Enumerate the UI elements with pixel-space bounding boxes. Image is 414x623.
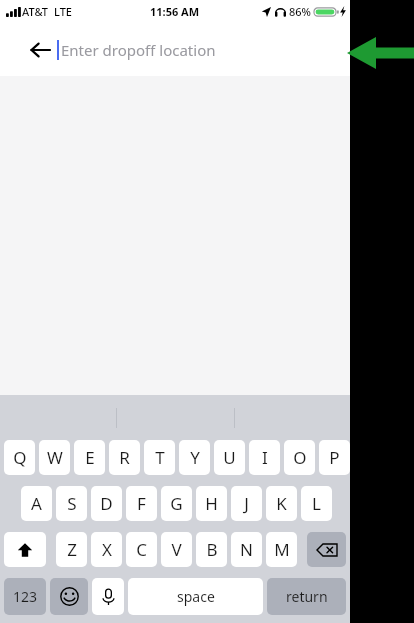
staticText: Y (190, 446, 200, 469)
staticText: I (262, 446, 268, 469)
button[interactable]: W (39, 440, 70, 475)
staticText: R (119, 446, 130, 469)
staticText: G (170, 492, 183, 515)
button[interactable]: T (144, 440, 175, 475)
button[interactable]: Emoji (50, 578, 88, 615)
button[interactable]: V (161, 532, 192, 567)
staticText: F (137, 492, 146, 515)
staticText: X (102, 538, 112, 561)
staticText: U (223, 446, 236, 469)
button[interactable]: X (91, 532, 122, 567)
button[interactable]: Shift (4, 532, 46, 567)
staticText: J (244, 492, 249, 515)
staticText: H (205, 492, 218, 515)
staticText: 86% (289, 4, 311, 19)
staticText: L (312, 492, 321, 515)
button[interactable]: K (266, 486, 297, 521)
staticText: LTE (54, 4, 72, 19)
staticText: 123 (13, 587, 38, 606)
button[interactable]: Backspace (307, 532, 346, 567)
button[interactable]: M (266, 532, 297, 567)
button[interactable]: Back (27, 37, 53, 63)
button[interactable]: Z (56, 532, 87, 567)
button[interactable]: R (109, 440, 140, 475)
button[interactable]: J (231, 486, 262, 521)
staticText: Enter dropoff location (61, 40, 216, 60)
button[interactable]: return (267, 578, 346, 615)
staticText: O (293, 446, 307, 469)
staticText: return (286, 587, 328, 606)
button[interactable]: Y (179, 440, 210, 475)
staticText: 11:56 AM (150, 4, 200, 19)
staticText: M (274, 538, 290, 561)
button[interactable]: O (284, 440, 315, 475)
button[interactable]: E (74, 440, 105, 475)
staticText: V (171, 538, 182, 561)
button[interactable]: L (301, 486, 332, 521)
button[interactable]: B (196, 532, 227, 567)
button[interactable]: S (56, 486, 87, 521)
staticText: A (31, 492, 42, 515)
staticText: AT&T (22, 4, 49, 19)
button[interactable]: F (126, 486, 157, 521)
button[interactable]: C (126, 532, 157, 567)
staticText: T (155, 446, 165, 469)
button[interactable]: I (249, 440, 280, 475)
button[interactable]: space (128, 578, 263, 615)
button[interactable]: A (21, 486, 52, 521)
button[interactable]: Q (4, 440, 35, 475)
staticText: E (85, 446, 95, 469)
button[interactable]: 123 (4, 578, 46, 615)
button[interactable]: G (161, 486, 192, 521)
staticText: space (177, 587, 215, 606)
staticText: S (67, 492, 77, 515)
button[interactable]: D (91, 486, 122, 521)
staticText: P (329, 446, 340, 469)
staticText: B (206, 538, 218, 561)
staticText: Q (13, 446, 27, 469)
staticText: Z (67, 538, 77, 561)
button[interactable]: P (319, 440, 350, 475)
staticText: D (100, 492, 113, 515)
staticText: W (47, 446, 63, 469)
button[interactable]: U (214, 440, 245, 475)
button[interactable]: Dictate (92, 578, 124, 615)
staticText: N (240, 538, 253, 561)
button[interactable]: Back (13, 28, 333, 71)
button[interactable]: H (196, 486, 227, 521)
button[interactable]: N (231, 532, 262, 567)
staticText: C (136, 538, 147, 561)
staticText: K (276, 492, 287, 515)
